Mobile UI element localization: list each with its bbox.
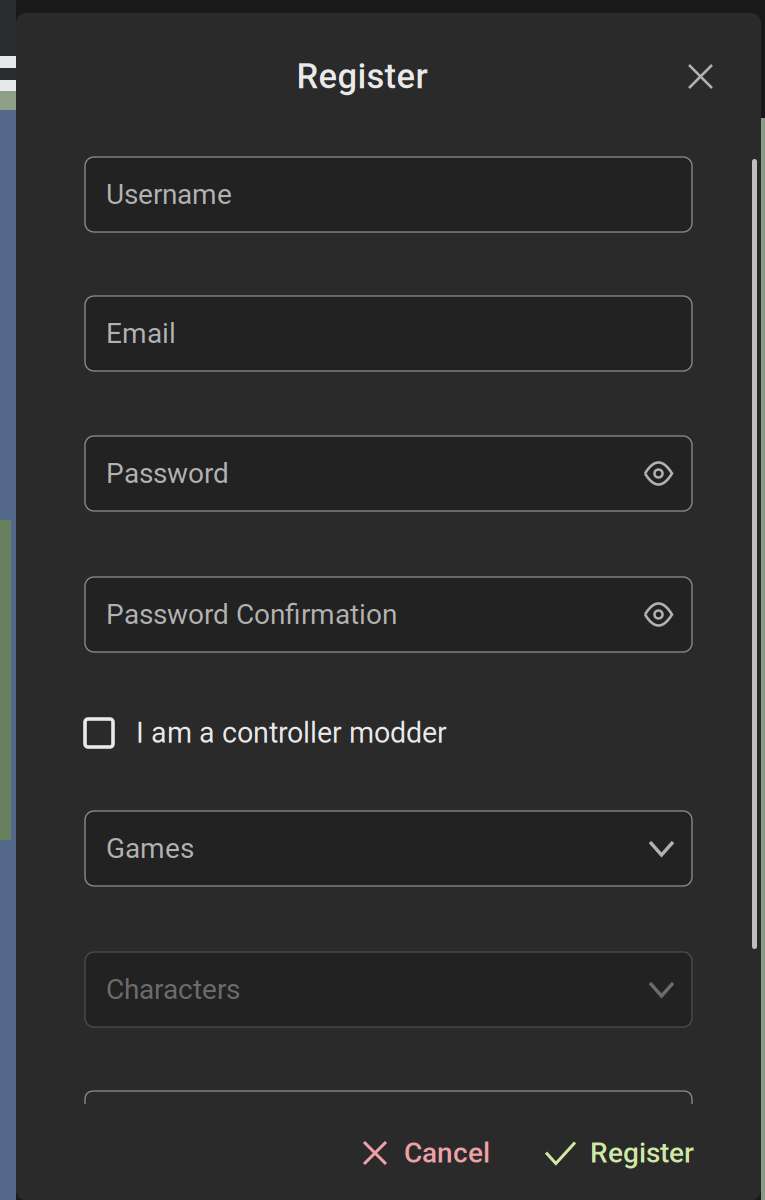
staticText: Password bbox=[106, 457, 229, 490]
button[interactable]: Characters bbox=[85, 952, 692, 1027]
staticText: Email bbox=[106, 317, 176, 350]
button[interactable]: Password bbox=[85, 436, 692, 511]
staticText: Register bbox=[590, 1137, 694, 1169]
button[interactable]: Cancel bbox=[350, 1121, 504, 1185]
staticText: Characters bbox=[106, 973, 240, 1006]
button[interactable]: I am a controller modder bbox=[85, 707, 692, 759]
staticText: Games bbox=[106, 832, 194, 865]
button[interactable]: Games bbox=[85, 811, 692, 886]
staticText: Cancel bbox=[404, 1137, 490, 1169]
button[interactable]: Password Confirmation bbox=[85, 577, 692, 652]
staticText: Register bbox=[296, 56, 427, 97]
staticText: I am a controller modder bbox=[136, 716, 447, 750]
staticText: Password Confirmation bbox=[106, 598, 397, 631]
button[interactable]: Register bbox=[532, 1121, 708, 1185]
staticText: Username bbox=[106, 178, 232, 211]
button[interactable]: Close bbox=[678, 54, 723, 99]
button[interactable]: Username bbox=[85, 157, 692, 232]
button[interactable]: Email bbox=[85, 296, 692, 371]
